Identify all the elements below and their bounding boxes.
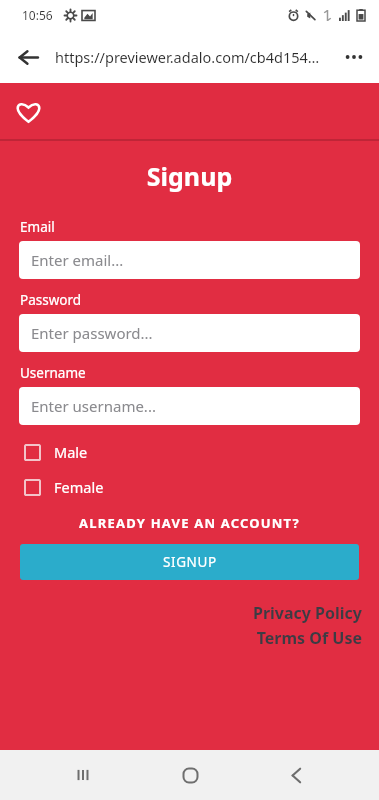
staticText: Enter username... bbox=[31, 396, 156, 416]
button[interactable]: Favorite bbox=[8, 92, 48, 132]
button[interactable]: Privacy Policy bbox=[252, 602, 362, 624]
staticText: Email bbox=[20, 218, 55, 236]
staticText: Enter password... bbox=[31, 323, 153, 343]
staticText: Enter email... bbox=[31, 250, 124, 270]
button[interactable]: Home bbox=[166, 751, 214, 799]
button[interactable]: Enter username... bbox=[19, 387, 360, 425]
button[interactable]: ALREADY HAVE AN ACCOUNT? bbox=[0, 512, 379, 534]
button[interactable]: Female bbox=[24, 473, 359, 501]
button[interactable]: SIGNUP bbox=[20, 544, 359, 580]
button[interactable]: Enter password... bbox=[19, 314, 360, 352]
staticText: 10:56 bbox=[22, 7, 53, 23]
button[interactable]: More options bbox=[335, 38, 373, 76]
staticText: https://previewer.adalo.com/cb4d154… bbox=[55, 47, 320, 67]
staticText: Username bbox=[20, 364, 86, 382]
staticText: Female bbox=[54, 477, 104, 497]
button[interactable]: Terms Of Use bbox=[256, 627, 362, 649]
button[interactable]: Back bbox=[272, 751, 320, 799]
staticText: Male bbox=[54, 442, 88, 462]
button[interactable]: Enter email... bbox=[19, 241, 360, 279]
staticText: Signup bbox=[0, 159, 379, 193]
staticText: SIGNUP bbox=[163, 553, 217, 571]
button[interactable]: Male bbox=[24, 438, 359, 466]
button[interactable]: Back bbox=[10, 39, 46, 75]
button[interactable]: Recent apps bbox=[59, 751, 107, 799]
staticText: Password bbox=[20, 291, 82, 309]
